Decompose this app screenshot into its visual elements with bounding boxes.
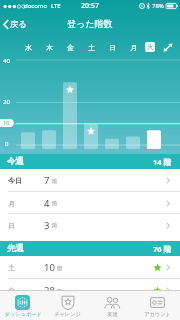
staticText: 28 [44, 284, 55, 297]
staticText: 20 [3, 98, 10, 106]
staticText: 今週 [7, 156, 24, 167]
staticText: 10 [3, 119, 10, 127]
button[interactable]: 金 [0, 279, 180, 302]
button[interactable]: 金 [63, 40, 77, 54]
staticText: 14 階 [153, 157, 172, 167]
staticText: 水 [25, 43, 32, 52]
staticText: 階 [57, 265, 62, 271]
staticText: 0 [5, 140, 9, 148]
staticText: 日 [8, 221, 44, 230]
staticText: 階 [57, 288, 62, 294]
staticText: LTE [51, 2, 61, 10]
staticText: 7 [44, 174, 50, 187]
staticText: 友達 [107, 311, 118, 318]
staticText: docomo [24, 2, 48, 10]
button[interactable]: 火 [145, 42, 155, 52]
staticText: チャレンジ [54, 311, 81, 318]
button[interactable]: 今日 [0, 169, 180, 192]
staticText: 木 [46, 43, 53, 52]
staticText: 階 [52, 178, 57, 184]
staticText: 今日 [8, 176, 44, 185]
staticText: 日 [109, 43, 116, 52]
staticText: 76 階 [153, 244, 172, 254]
staticText: 火 [147, 43, 154, 51]
button[interactable]: 戻る [0, 17, 34, 32]
staticText: 月 [8, 199, 44, 208]
staticText: 階 [52, 200, 57, 206]
staticText: 先週 [7, 243, 24, 254]
staticText: 土 [8, 263, 44, 272]
staticText: 土 [88, 43, 95, 52]
button[interactable]: 水 [21, 40, 35, 54]
staticText: 40 [3, 57, 10, 65]
button[interactable]: Expand chart [160, 40, 176, 54]
staticText: 戻る [10, 19, 28, 30]
staticText: 階 [52, 222, 57, 228]
staticText: アカウント [144, 311, 171, 318]
staticText: ダッシュボード [4, 311, 42, 318]
button[interactable]: アカウント [135, 291, 180, 320]
staticText: 4 [44, 197, 50, 210]
staticText: 登った階数 [67, 18, 113, 29]
button[interactable]: 日 [105, 40, 119, 54]
button[interactable]: チャレンジ [45, 291, 90, 320]
button[interactable]: 友達 [90, 291, 135, 320]
button[interactable]: 月 [126, 40, 140, 54]
staticText: 10 [44, 261, 55, 274]
staticText: 3 [44, 219, 50, 232]
button[interactable]: 木 [42, 40, 56, 54]
staticText: 78% [152, 2, 164, 10]
staticText: 金 [8, 286, 44, 295]
staticText: 月 [130, 43, 137, 52]
staticText: 金 [67, 43, 74, 52]
staticText: 20:57 [81, 1, 99, 11]
button[interactable]: ダッシュボード [0, 291, 45, 320]
button[interactable]: 月 [0, 192, 180, 214]
button[interactable]: 日 [0, 214, 180, 236]
button[interactable]: 土 [0, 256, 180, 279]
button[interactable]: 土 [84, 40, 98, 54]
